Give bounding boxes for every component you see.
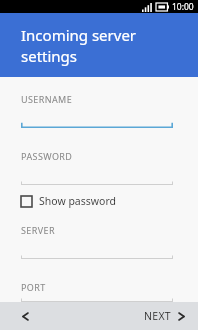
staticText: NEXT [144,309,172,323]
button[interactable] [21,122,173,128]
button[interactable]: Show password [21,191,116,211]
button[interactable] [21,179,173,185]
staticText: PASSWORD [21,150,73,162]
button[interactable] [21,253,173,259]
staticText: Show password [39,194,116,208]
button[interactable]: Back [12,303,38,329]
staticText: PORT [21,281,46,293]
staticText: Incoming server settings [21,25,137,67]
staticText: USERNAME [21,93,73,105]
staticText: 10:00 [172,1,194,13]
button[interactable]: NEXT [140,305,188,327]
staticText: SERVER [21,224,55,236]
